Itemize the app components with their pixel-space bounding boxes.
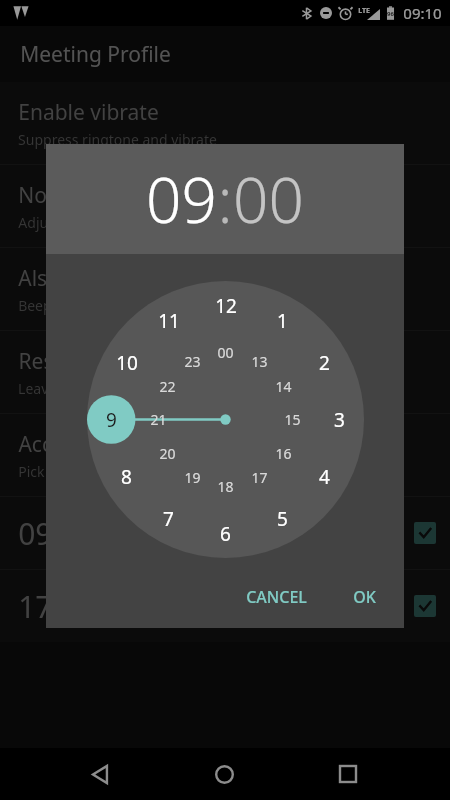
staticText: 5 [277, 506, 288, 532]
staticText: 11 [158, 308, 180, 334]
staticText: 20 [159, 444, 176, 463]
staticText: 19 [184, 468, 201, 487]
staticText: : [217, 157, 233, 241]
staticText: Scheduled stop [105, 611, 199, 629]
staticText: 23 [184, 352, 201, 371]
staticText: Also silence alarms [18, 264, 206, 293]
button[interactable]: 09:00 [0, 497, 450, 569]
staticText: 09 [146, 157, 217, 241]
staticText: Enable vibrate [18, 98, 159, 127]
button[interactable]: 09 [146, 157, 217, 241]
button[interactable]: 17:00 [0, 570, 450, 642]
staticText: Beep once when a timer completes on [18, 296, 270, 315]
staticText: 1 [277, 308, 288, 334]
staticText: 12 [215, 293, 237, 319]
staticText: 7 [163, 506, 174, 532]
staticText: 15 [284, 410, 301, 429]
staticText: 22 [159, 377, 176, 396]
staticText: 96 [387, 10, 394, 18]
staticText: Adjust volume while profile is on [18, 213, 232, 232]
button[interactable]: Account sync [0, 414, 450, 496]
staticText: 8 [121, 464, 132, 490]
staticText: 6 [220, 521, 231, 547]
staticText: 18 [217, 477, 234, 496]
button[interactable]: Back [79, 752, 123, 796]
staticText: OK [353, 586, 376, 608]
staticText: 09:00 [18, 513, 95, 554]
button[interactable]: Home [202, 752, 246, 796]
staticText: 10 [116, 350, 138, 376]
staticText: 4 [319, 464, 330, 490]
staticText: Pick accounts to pause while active [18, 462, 248, 481]
staticText: 9 [106, 407, 117, 433]
staticText: 3 [334, 407, 345, 433]
staticText: 17:00 [18, 586, 95, 627]
staticText: Meeting Profile [20, 40, 171, 69]
button[interactable]: Enable vibrate [0, 82, 450, 164]
button[interactable]: Toggle [414, 595, 436, 617]
staticText: LTE [358, 6, 370, 16]
staticText: Enable profile [105, 511, 235, 538]
button[interactable]: Notification volume [0, 165, 450, 247]
staticText: 16 [275, 444, 292, 463]
staticText: 00 [233, 157, 304, 241]
staticText: 14 [275, 377, 292, 396]
staticText: 21 [150, 410, 167, 429]
button[interactable]: Restore volume [0, 331, 450, 413]
staticText: Notification volume [18, 181, 212, 210]
button[interactable]: Clock face [87, 281, 364, 558]
staticText: 09:10 [403, 3, 442, 23]
staticText: 17 [251, 468, 268, 487]
staticText: Scheduled start [105, 538, 201, 556]
button[interactable]: CANCEL [232, 576, 321, 618]
button[interactable]: 00 [233, 157, 304, 241]
staticText: 00 [217, 343, 234, 362]
staticText: 2 [319, 350, 330, 376]
staticText: 13 [251, 352, 268, 371]
staticText: Restore volume [18, 347, 173, 376]
staticText: Suppress ringtone and vibrate [18, 130, 217, 149]
staticText: CANCEL [246, 586, 307, 608]
staticText: Account sync [18, 430, 148, 459]
button[interactable]: Recents [326, 752, 370, 796]
button[interactable]: Toggle [414, 522, 436, 544]
button[interactable]: Also silence alarms [0, 248, 450, 330]
button[interactable]: OK [339, 576, 390, 618]
staticText: Leave volume as the profile set it [18, 379, 234, 398]
